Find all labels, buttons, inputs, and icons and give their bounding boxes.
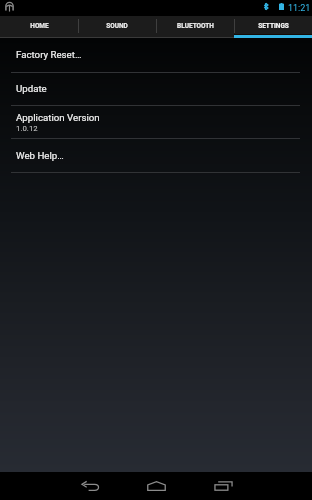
staticText: Application Version (16, 112, 100, 123)
button[interactable]: BLUETOOTH (156, 16, 234, 38)
button[interactable]: Application Version (0, 106, 312, 139)
staticText: HOME (30, 22, 49, 30)
button[interactable]: SETTINGS (234, 16, 312, 38)
staticText: BLUETOOTH (177, 22, 214, 30)
button[interactable]: SOUND (78, 16, 156, 38)
button[interactable]: Web Help… (0, 139, 312, 173)
staticText: Factory Reset… (16, 49, 82, 60)
staticText: 1.0.12 (16, 124, 38, 133)
staticText: SETTINGS (258, 22, 289, 30)
staticText: Update (16, 83, 47, 94)
button[interactable]: Factory Reset… (0, 38, 312, 73)
button[interactable]: Home (142, 474, 170, 498)
staticText: 11:21 (288, 3, 311, 14)
staticText: Web Help… (16, 150, 64, 161)
staticText: SOUND (106, 22, 128, 30)
button[interactable]: Back (76, 474, 104, 498)
button[interactable]: Update (0, 73, 312, 106)
button[interactable]: HOME (0, 16, 78, 38)
button[interactable]: Recent apps (209, 474, 237, 498)
